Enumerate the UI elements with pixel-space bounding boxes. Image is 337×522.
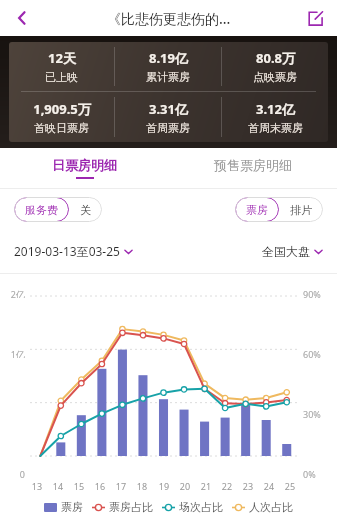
staticText: 已上映 [45, 70, 78, 84]
button[interactable]: 日票房明细 [0, 148, 168, 188]
staticText: 30% [303, 408, 337, 418]
staticText: 全国大盘 [262, 244, 310, 259]
staticText: 场次占比 [179, 500, 223, 514]
staticText: 点映票房 [253, 70, 297, 84]
staticText: 24 [262, 480, 276, 492]
button[interactable]: Share [293, 0, 337, 36]
button[interactable]: 人次占比 [232, 500, 293, 514]
staticText: 2亿 [0, 288, 25, 298]
button[interactable]: 场次占比 [162, 500, 223, 514]
staticText: 《比悲伤更悲伤的... [107, 9, 231, 28]
staticText: 票房占比 [109, 500, 153, 514]
button[interactable]: 关 [69, 197, 102, 222]
staticText: 0 [0, 468, 25, 478]
staticText: 首周票房 [146, 121, 190, 135]
staticText: 14 [51, 480, 65, 492]
staticText: 20 [178, 480, 192, 492]
staticText: 19 [157, 480, 171, 492]
staticText: 80.8万 [256, 49, 295, 67]
staticText: 25 [283, 480, 297, 492]
staticText: 日票房明细 [52, 157, 117, 173]
staticText: 首映日票房 [34, 121, 89, 135]
staticText: 13 [30, 480, 44, 492]
staticText: 90% [303, 288, 337, 298]
staticText: 2019-03-13至03-25 [14, 243, 120, 259]
staticText: 18 [135, 480, 149, 492]
staticText: 人次占比 [249, 500, 293, 514]
staticText: 17 [114, 480, 128, 492]
staticText: 12天 [48, 49, 76, 67]
staticText: 0% [303, 468, 337, 478]
staticText: 关 [80, 203, 91, 217]
staticText: 票房 [61, 500, 83, 514]
staticText: 票房 [246, 203, 268, 217]
button[interactable]: 票房占比 [92, 500, 153, 514]
staticText: 1亿 [0, 348, 25, 358]
staticText: 服务费 [25, 203, 58, 217]
button[interactable]: 全国大盘 [262, 244, 323, 259]
staticText: 22 [220, 480, 234, 492]
staticText: 3.31亿 [149, 100, 188, 118]
staticText: 首周末票房 [248, 121, 303, 135]
button[interactable]: Back [0, 0, 44, 36]
button[interactable]: 票房 [235, 197, 279, 222]
staticText: 16 [93, 480, 107, 492]
staticText: 15 [72, 480, 86, 492]
staticText: 预售票房明细 [214, 157, 292, 173]
staticText: 21 [199, 480, 213, 492]
button[interactable]: 预售票房明细 [168, 148, 337, 188]
staticText: 23 [241, 480, 255, 492]
staticText: 3.12亿 [256, 100, 295, 118]
staticText: 8.19亿 [149, 49, 188, 67]
button[interactable]: 票房 [44, 500, 83, 514]
button[interactable]: 排片 [279, 197, 323, 222]
staticText: 1,909.5万 [33, 100, 91, 118]
button[interactable]: 2019-03-13至03-25 [14, 243, 133, 259]
staticText: 排片 [290, 203, 312, 217]
staticText: 累计票房 [146, 70, 190, 84]
staticText: 60% [303, 348, 337, 358]
button[interactable]: 服务费 [14, 197, 69, 222]
